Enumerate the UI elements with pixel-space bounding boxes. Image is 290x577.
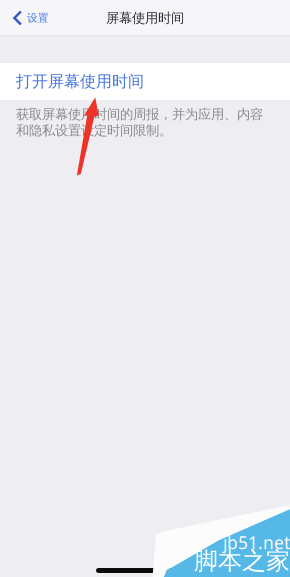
button[interactable]: 设置	[0, 0, 59, 36]
staticText: jb51.net	[223, 531, 290, 554]
staticText: 打开屏幕使用时间	[16, 72, 144, 91]
staticText: 设置	[27, 11, 49, 24]
staticText: 获取屏幕使用时间的周报，并为应用、内容 和隐私设置设定时间限制。	[16, 106, 263, 139]
staticText: 脚本之家	[194, 546, 290, 576]
button[interactable]: 打开屏幕使用时间	[0, 63, 290, 100]
staticText: 屏幕使用时间	[106, 10, 184, 26]
